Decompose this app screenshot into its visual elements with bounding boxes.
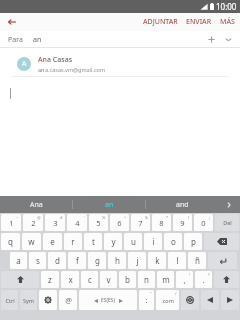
staticText: 6 [117,218,122,228]
button[interactable]: e [43,233,62,250]
button[interactable]: 5 [89,214,108,231]
button[interactable]: t [84,233,102,250]
button[interactable]: Space [79,290,137,310]
button[interactable]: d [48,252,66,269]
staticText: % [102,215,106,220]
staticText: # [60,215,63,220]
staticText: 5 [96,218,101,228]
staticText: g [95,255,100,266]
button[interactable]: and [146,196,218,213]
button[interactable]: q [1,233,20,250]
button[interactable]: Add contact [206,34,217,45]
button[interactable]: w [22,233,41,250]
button[interactable]: ADJUNTAR [143,17,178,27]
button[interactable]: Delete [215,214,239,231]
button[interactable]: r [64,233,82,250]
staticText: m [162,274,170,285]
button[interactable]: y [104,233,122,250]
staticText: x [68,274,73,285]
staticText: .com [161,297,174,304]
staticText: ñ [195,255,200,266]
button[interactable]: f [68,252,86,269]
staticText: Ana [30,200,43,210]
button[interactable]: 7 [131,214,150,231]
button[interactable]: Expand [223,34,234,45]
button[interactable]: Enter [208,252,237,269]
button[interactable]: an [73,196,145,213]
button[interactable]: Shift [1,271,39,288]
button[interactable]: h [108,252,126,269]
button[interactable]: l [168,252,186,269]
button[interactable]: i [144,233,162,250]
button[interactable]: m [157,271,174,288]
button[interactable]: . [195,271,212,288]
staticText: b [125,274,130,285]
staticText: 10:00 [216,1,237,12]
button[interactable]: Ana [0,196,72,213]
staticText: s [36,255,40,266]
staticText: p [191,236,196,247]
button[interactable]: u [124,233,142,250]
button[interactable]: 8 [152,214,171,231]
staticText: ¡ [209,215,211,220]
staticText: ) [188,215,190,220]
button[interactable]: 1 [1,214,21,231]
staticText: @ [65,295,72,305]
staticText: Del [223,219,232,226]
button[interactable]: s [29,252,46,269]
staticText: an [38,66,45,73]
staticText: a [16,255,21,266]
button[interactable]: ENVIAR [186,17,212,27]
button[interactable]: k [148,252,166,269]
staticText: Sym [23,297,34,304]
staticText: q [8,236,13,247]
button[interactable]: 2 [23,214,43,231]
staticText: v [106,274,111,285]
button[interactable]: n [138,271,155,288]
button[interactable]: Settings [39,290,57,310]
button[interactable]: Change language [181,290,199,310]
button[interactable]: Left [201,290,219,310]
button[interactable]: p [184,233,202,250]
staticText: ! [189,272,191,277]
button[interactable]: ñ [188,252,206,269]
staticText: f [76,255,79,266]
staticText: MÁS [220,17,235,27]
button[interactable]: .com [156,290,179,310]
staticText: 8 [159,218,164,228]
button[interactable]: : [139,290,154,310]
button[interactable]: Right [221,290,239,310]
button[interactable]: Back [5,15,19,29]
button[interactable]: More suggestions [218,196,240,213]
staticText: h [115,255,120,266]
button[interactable]: b [119,271,136,288]
staticText: l [176,255,179,266]
button[interactable]: , [176,271,193,288]
button[interactable]: Sym [20,290,37,310]
button[interactable]: @ [59,290,77,310]
button[interactable]: 6 [110,214,129,231]
button[interactable]: j [128,252,146,269]
staticText: " [150,291,152,296]
staticText: ENVIAR [186,17,212,27]
button[interactable]: z [41,271,59,288]
button[interactable]: Ctrl [1,290,18,310]
button[interactable]: o [164,233,182,250]
button[interactable]: x [61,271,79,288]
button[interactable]: Backspace [204,233,239,250]
staticText: o [171,236,176,247]
staticText: an [105,200,114,210]
staticText: w [28,236,35,247]
button[interactable]: g [88,252,106,269]
button[interactable]: A [12,51,228,77]
button[interactable]: 3 [45,214,65,231]
button[interactable]: c [81,271,98,288]
button[interactable]: a [10,252,27,269]
button[interactable]: 9 [173,214,192,231]
button[interactable]: 0 [194,214,213,231]
button[interactable]: Shift [214,271,239,288]
staticText: r [71,236,75,247]
button[interactable]: 4 [67,214,87,231]
button[interactable]: MÁS [220,17,235,27]
button[interactable]: v [100,271,117,288]
